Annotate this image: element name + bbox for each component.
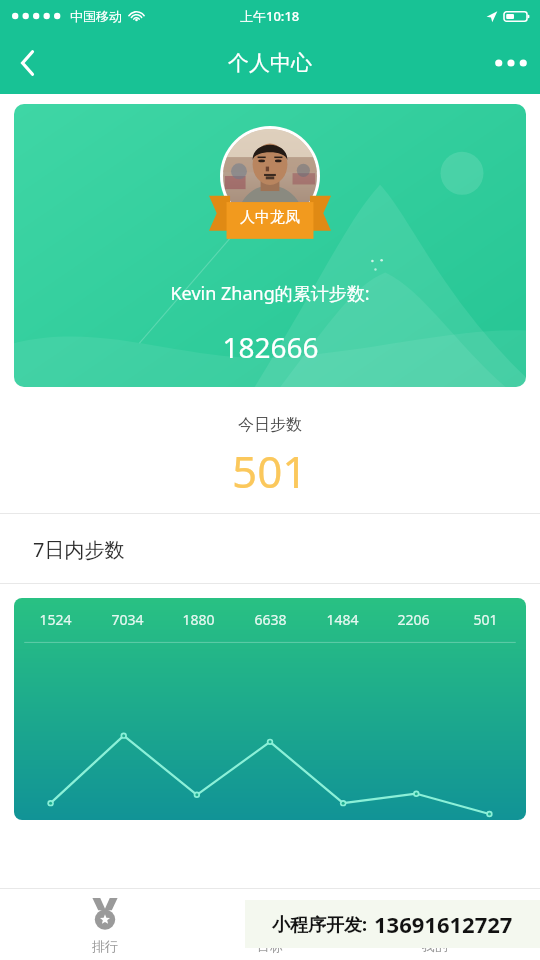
staticText: 人中龙凤 — [240, 208, 300, 227]
button[interactable]: 1524 — [14, 598, 526, 820]
staticText: 182666 — [222, 328, 319, 366]
staticText: 1524 — [39, 610, 72, 629]
button[interactable]: 人中龙凤 — [14, 104, 526, 387]
staticText: 中国移动 — [70, 8, 122, 24]
staticText: 1880 — [182, 610, 215, 629]
button[interactable]: 排行 — [45, 888, 165, 960]
button[interactable]: 目标 — [210, 888, 330, 960]
staticText: 今日步数 — [238, 415, 302, 435]
staticText: 501 — [232, 441, 308, 501]
staticText: 上午10:18 — [240, 7, 300, 25]
staticText: 13691612727 — [374, 909, 513, 939]
staticText: 501 — [473, 610, 498, 629]
button[interactable]: More options — [482, 32, 540, 94]
staticText: 2206 — [397, 610, 430, 629]
staticText: 7034 — [111, 610, 144, 629]
button[interactable]: 小程序开发: — [245, 900, 540, 948]
staticText: 排行 — [92, 938, 118, 954]
staticText: 7日内步数 — [33, 536, 125, 563]
staticText: 6638 — [254, 610, 287, 629]
staticText: 目标 — [257, 938, 283, 954]
button[interactable]: Back — [0, 32, 56, 94]
staticText: 1484 — [326, 610, 359, 629]
staticText: 我的 — [422, 938, 448, 954]
button[interactable]: 我的 — [375, 888, 495, 960]
staticText: 个人中心 — [228, 50, 312, 76]
button[interactable]: 人中龙凤 — [209, 194, 331, 240]
staticText: 小程序开发: — [272, 912, 368, 937]
staticText: Kevin Zhang的累计步数: — [170, 281, 370, 306]
